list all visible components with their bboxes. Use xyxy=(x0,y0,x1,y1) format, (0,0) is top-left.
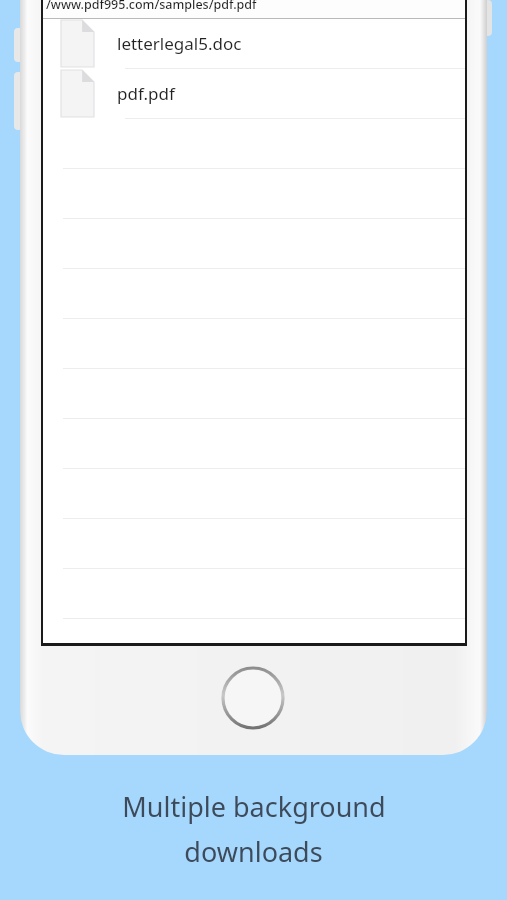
button[interactable]: /www.pdf995.com/samples/pdf.pdf xyxy=(43,0,465,18)
staticText: letterlegal5.doc xyxy=(117,32,242,55)
staticText: Multiple background xyxy=(122,788,386,825)
staticText: pdf.pdf xyxy=(117,82,175,105)
button[interactable]: letterlegal5.doc xyxy=(43,19,465,69)
staticText: downloads xyxy=(184,833,323,870)
button[interactable]: Home xyxy=(221,666,285,730)
staticText: /www.pdf995.com/samples/pdf.pdf xyxy=(46,0,257,13)
button[interactable]: pdf.pdf xyxy=(43,69,465,119)
